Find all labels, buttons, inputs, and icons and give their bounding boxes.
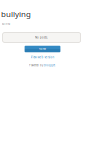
button[interactable]: Powered by (20, 63, 64, 68)
staticText: bullying (2, 22, 10, 25)
staticText: Powered by (29, 63, 43, 67)
staticText: Home (38, 47, 46, 51)
button[interactable]: Home (25, 46, 60, 52)
staticText: Blogger. (44, 63, 56, 67)
staticText: No posts. (35, 36, 48, 39)
button[interactable]: View web version (22, 55, 62, 60)
staticText: View web version (30, 55, 54, 59)
staticText: bullying (1, 9, 31, 19)
